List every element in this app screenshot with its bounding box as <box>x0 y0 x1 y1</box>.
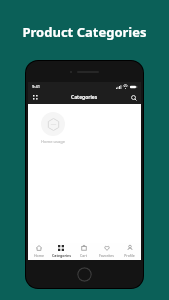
button[interactable]: Profile <box>118 243 141 260</box>
staticText: Profile <box>124 253 135 258</box>
button[interactable]: Cart <box>72 243 95 260</box>
button[interactable]: Search <box>129 93 138 102</box>
staticText: Home <box>34 253 44 258</box>
staticText: Categories <box>52 253 71 258</box>
staticText: Cart <box>80 253 87 258</box>
button[interactable]: Home <box>28 243 50 260</box>
button[interactable]: Home usage <box>38 112 68 144</box>
button[interactable]: Categories <box>50 243 72 260</box>
staticText: Product Categories <box>22 23 147 41</box>
staticText: 9:41 <box>32 84 40 89</box>
staticText: Home usage <box>41 139 65 144</box>
button[interactable]: Favorites <box>95 243 118 260</box>
staticText: Categories <box>71 94 98 101</box>
staticText: Favorites <box>99 253 114 258</box>
button[interactable]: Menu <box>31 93 40 102</box>
